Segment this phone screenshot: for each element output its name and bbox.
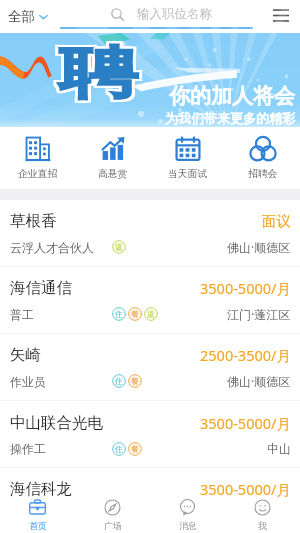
staticText: 餐 <box>131 309 139 319</box>
staticText: 草根香 <box>10 211 57 231</box>
button[interactable]: 海信通信 <box>0 267 300 333</box>
staticText: 输入职位名称 <box>137 6 212 22</box>
staticText: 为我们带来更多的精彩 <box>165 110 295 126</box>
button[interactable]: 广场 <box>75 497 150 533</box>
staticText: 广场 <box>104 520 122 531</box>
staticText: 2500-3500/月 <box>200 345 291 365</box>
staticText: 聘 <box>62 38 141 109</box>
staticText: 当天面试 <box>168 168 208 180</box>
staticText: 聘 <box>56 38 136 109</box>
staticText: 中山 <box>267 441 291 456</box>
button[interactable]: 消息 <box>150 497 225 533</box>
staticText: 你的加人将会 <box>169 83 295 109</box>
staticText: 聘 <box>59 36 138 107</box>
staticText: 海信科龙 <box>10 479 72 499</box>
staticText: 消息 <box>179 520 197 531</box>
staticText: 餐 <box>131 376 139 386</box>
staticText: 佛山·顺德区 <box>227 507 291 523</box>
staticText: 返 <box>115 242 123 252</box>
staticText: 企业直招 <box>18 168 58 180</box>
staticText: 佛山·顺德区 <box>227 373 291 389</box>
button[interactable]: 高悬赏 <box>75 127 150 189</box>
staticText: 全部 <box>8 8 35 25</box>
staticText: 住 <box>115 444 123 454</box>
staticText: 聘 <box>56 40 136 111</box>
staticText: 返 <box>147 309 155 319</box>
staticText: 普工 <box>10 508 34 523</box>
staticText: 住 <box>115 309 123 319</box>
staticText: 3500-5000/月 <box>200 278 291 298</box>
button[interactable]: 草根香 <box>0 200 300 266</box>
staticText: 住 <box>115 510 123 520</box>
staticText: 我 <box>258 520 267 531</box>
staticText: 海信通信 <box>10 278 72 298</box>
staticText: 作业员 <box>10 374 46 389</box>
staticText: 云浮人才合伙人 <box>10 240 94 255</box>
staticText: 聘 <box>56 36 136 107</box>
staticText: 普工 <box>10 307 34 322</box>
staticText: 聘 <box>59 40 138 111</box>
staticText: 招聘会 <box>248 168 278 180</box>
staticText: 3500-5000/月 <box>200 479 291 499</box>
button[interactable]: 首页 <box>0 497 75 533</box>
staticText: 餐 <box>131 444 139 454</box>
button[interactable]: 矢崎 <box>0 334 300 400</box>
button[interactable]: 输入职位名称 <box>60 0 253 33</box>
staticText: 佛山·顺德区 <box>227 239 291 255</box>
button[interactable]: Menu <box>261 0 300 33</box>
staticText: 江门·蓬江区 <box>227 306 291 322</box>
staticText: 3500-5000/月 <box>200 413 291 433</box>
staticText: 聘 <box>62 40 141 111</box>
button[interactable]: 当天面试 <box>150 127 225 189</box>
button[interactable]: 招聘会 <box>225 127 300 189</box>
staticText: 矢崎 <box>10 345 41 365</box>
button[interactable]: 海信科龙 <box>0 468 300 533</box>
staticText: 聘 <box>59 38 138 109</box>
button[interactable]: 中山联合光电 <box>0 401 300 467</box>
staticText: 中山联合光电 <box>10 413 103 433</box>
staticText: 首页 <box>29 520 47 531</box>
staticText: 聘 <box>62 36 141 107</box>
staticText: 操作工 <box>10 441 46 456</box>
button[interactable]: 我 <box>225 497 300 533</box>
button[interactable]: 企业直招 <box>0 127 75 189</box>
staticText: 高悬赏 <box>98 168 128 180</box>
staticText: 住 <box>115 376 123 386</box>
staticText: 面议 <box>262 212 291 230</box>
button[interactable]: 全部 <box>0 4 56 29</box>
